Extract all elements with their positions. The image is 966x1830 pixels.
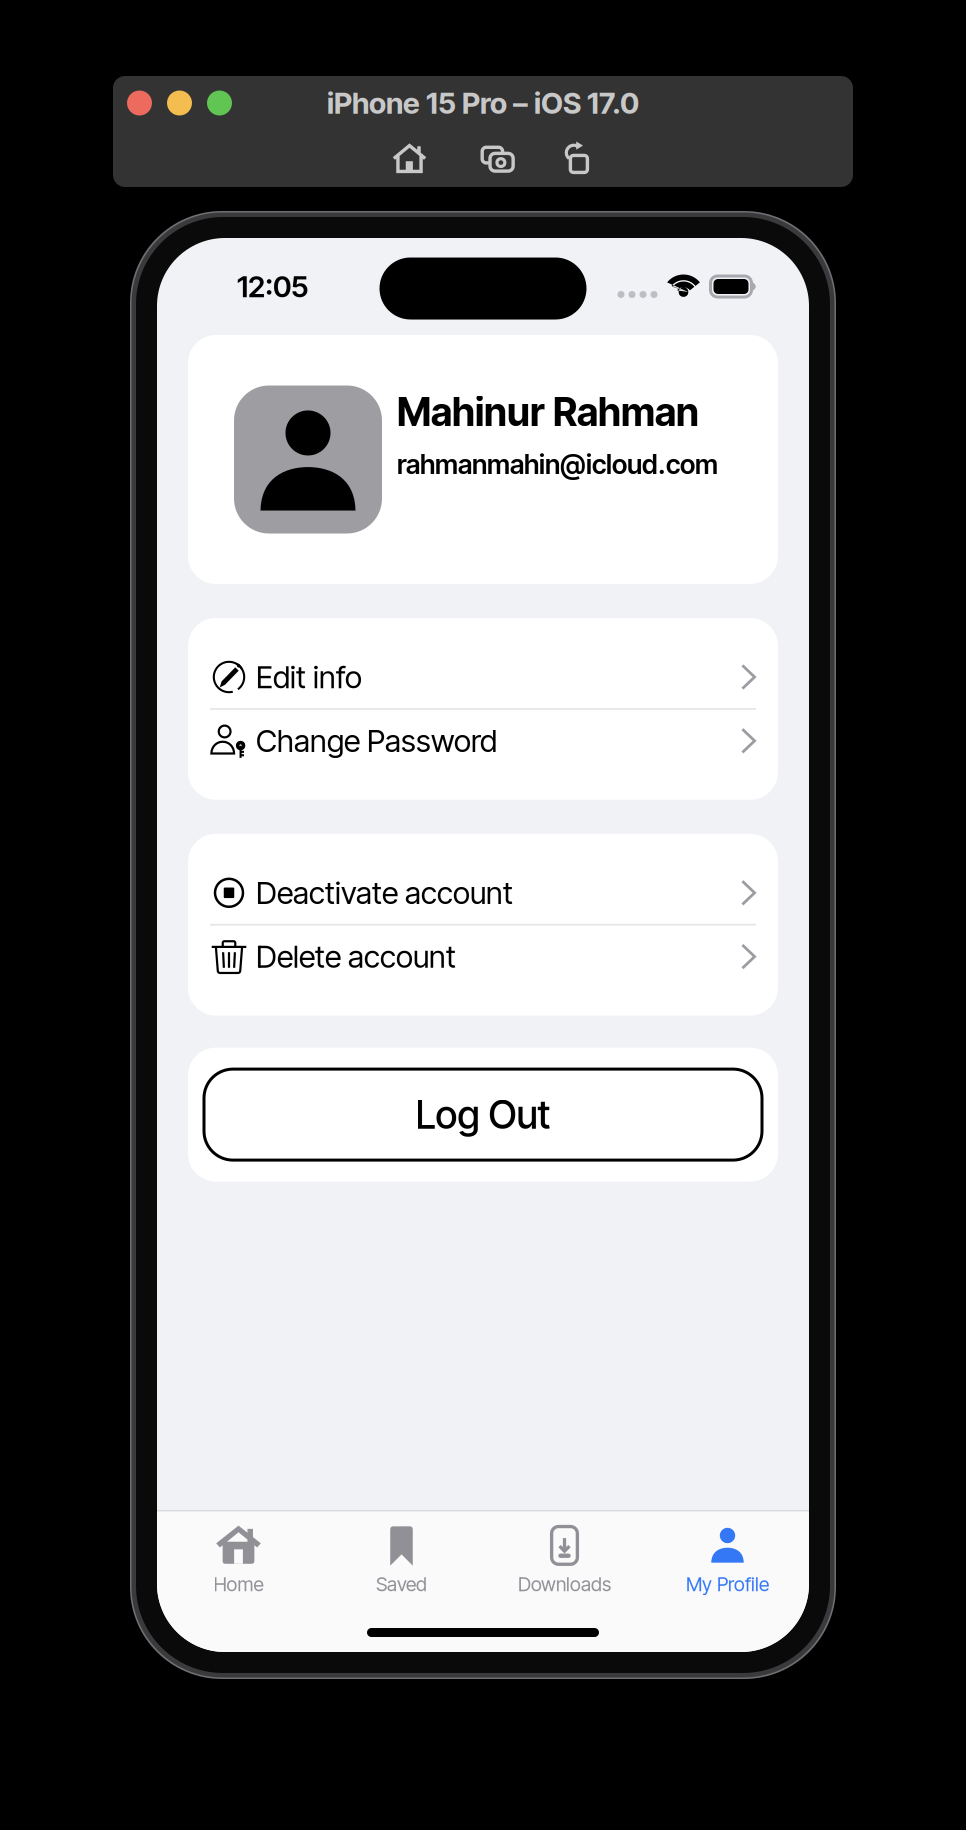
staticText: Deactivate account (256, 874, 513, 911)
button[interactable]: Downloads (483, 1511, 646, 1596)
button[interactable]: My Profile (646, 1511, 809, 1596)
staticText: Downloads (518, 1572, 611, 1596)
staticText: rahmanmahin@icloud.com (397, 448, 718, 481)
button[interactable]: Rotate (558, 141, 592, 175)
button[interactable]: Delete account (188, 926, 778, 988)
button[interactable]: Home (157, 1511, 320, 1596)
staticText: Log Out (415, 1091, 550, 1138)
button[interactable]: Log Out (188, 1048, 778, 1182)
staticText: 12:05 (237, 269, 308, 304)
staticText: iPhone 15 Pro – iOS 17.0 (327, 85, 639, 121)
staticText: Mahinur Rahman (397, 388, 699, 435)
button[interactable]: Home (392, 141, 426, 175)
staticText: Home (213, 1572, 263, 1596)
button[interactable]: Screenshot (480, 141, 514, 175)
staticText: Change Password (256, 722, 497, 759)
staticText: Delete account (256, 938, 456, 975)
button[interactable]: Deactivate account (188, 862, 778, 924)
staticText: Edit info (256, 658, 362, 695)
button[interactable]: Edit info (188, 646, 778, 708)
button[interactable]: Change Password (188, 710, 778, 772)
staticText: Saved (376, 1572, 427, 1596)
button[interactable]: Saved (320, 1511, 483, 1596)
staticText: My Profile (686, 1572, 769, 1596)
